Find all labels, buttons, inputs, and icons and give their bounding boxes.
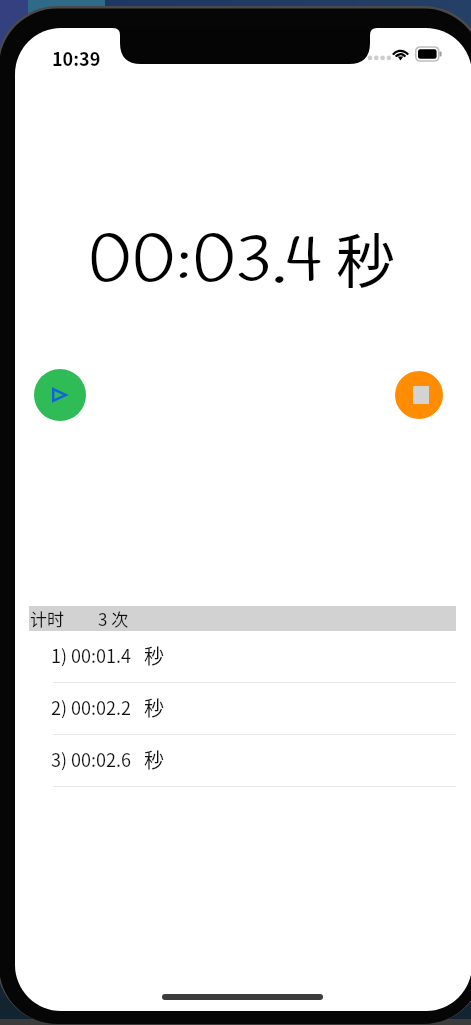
button[interactable]: 3) 00:02.6 (15, 735, 471, 787)
staticText: 10:39 (52, 45, 101, 71)
staticText: 秒 (336, 215, 396, 300)
staticText: 2) 00:02.2 (51, 694, 132, 720)
staticText: 秒 (144, 745, 164, 774)
staticText: 00:03.4 (88, 217, 323, 308)
staticText: 秒 (144, 641, 164, 670)
button[interactable]: Stop (395, 371, 443, 419)
staticText: 3) 00:02.6 (51, 746, 132, 772)
staticText: 1) 00:01.4 (51, 642, 132, 668)
staticText: 秒 (144, 693, 164, 722)
staticText: 计时 3 次 (30, 606, 129, 631)
button[interactable]: 2) 00:02.2 (15, 683, 471, 735)
button[interactable]: 1) 00:01.4 (15, 631, 471, 683)
button[interactable]: Start (34, 369, 86, 421)
